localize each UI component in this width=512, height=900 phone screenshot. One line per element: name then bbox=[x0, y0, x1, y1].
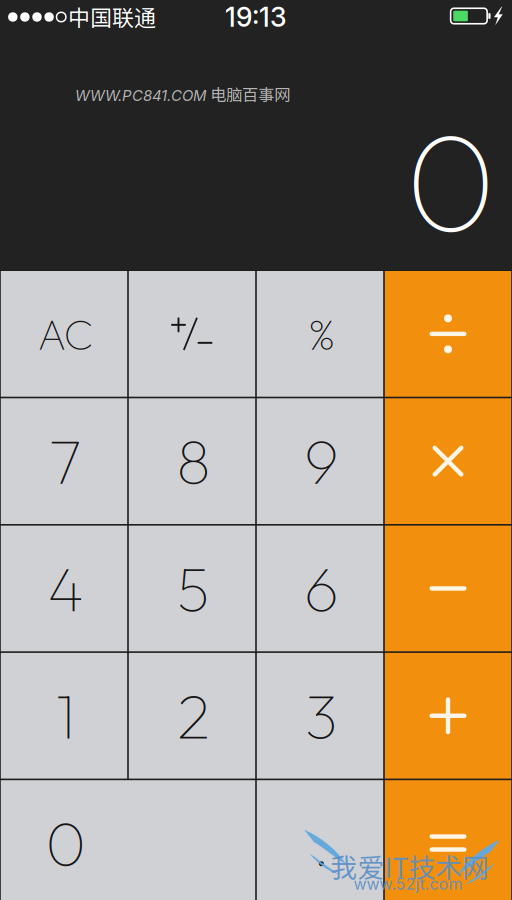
staticText: 6 bbox=[304, 550, 339, 627]
button[interactable]: 3 bbox=[256, 652, 384, 779]
button[interactable]: 2 bbox=[128, 652, 256, 779]
staticText: 19:13 bbox=[225, 1, 287, 33]
button[interactable]: Plus minus bbox=[128, 270, 256, 397]
staticText: 2 bbox=[177, 677, 210, 754]
staticText: 9 bbox=[304, 422, 339, 500]
staticText: 7 bbox=[49, 422, 82, 500]
button[interactable]: 6 bbox=[256, 525, 384, 652]
staticText: 我爱IT技术网 bbox=[330, 847, 489, 885]
staticText: . bbox=[312, 804, 330, 882]
staticText: 0 bbox=[405, 93, 496, 267]
button[interactable]: 5 bbox=[128, 525, 256, 652]
staticText: WWW.PC841.COM 电脑百事网 bbox=[75, 82, 290, 105]
button[interactable]: Divide bbox=[384, 270, 512, 397]
button[interactable]: 4 bbox=[0, 525, 128, 652]
staticText: 中国联通 bbox=[68, 1, 156, 32]
staticText: 8 bbox=[176, 422, 210, 500]
staticText: 1 bbox=[55, 677, 75, 754]
button[interactable]: Plus bbox=[384, 652, 512, 779]
button[interactable]: AC bbox=[0, 270, 128, 397]
button[interactable]: Multiply bbox=[384, 397, 512, 525]
staticText: AC bbox=[37, 307, 93, 361]
staticText: 3 bbox=[305, 677, 338, 754]
staticText: www.52jt.com bbox=[353, 874, 462, 894]
staticText: 4 bbox=[47, 550, 83, 627]
button[interactable]: 1 bbox=[0, 652, 128, 779]
button[interactable]: . bbox=[256, 779, 384, 900]
button[interactable]: 9 bbox=[256, 397, 384, 525]
staticText: % bbox=[307, 307, 335, 361]
button[interactable]: 0 bbox=[0, 779, 256, 900]
button[interactable]: 7 bbox=[0, 397, 128, 525]
button[interactable]: 8 bbox=[128, 397, 256, 525]
button[interactable]: Equals bbox=[384, 779, 512, 900]
staticText: 0 bbox=[45, 804, 85, 882]
staticText: 5 bbox=[177, 550, 210, 627]
button[interactable]: Minus bbox=[384, 525, 512, 652]
button[interactable]: % bbox=[256, 270, 384, 397]
